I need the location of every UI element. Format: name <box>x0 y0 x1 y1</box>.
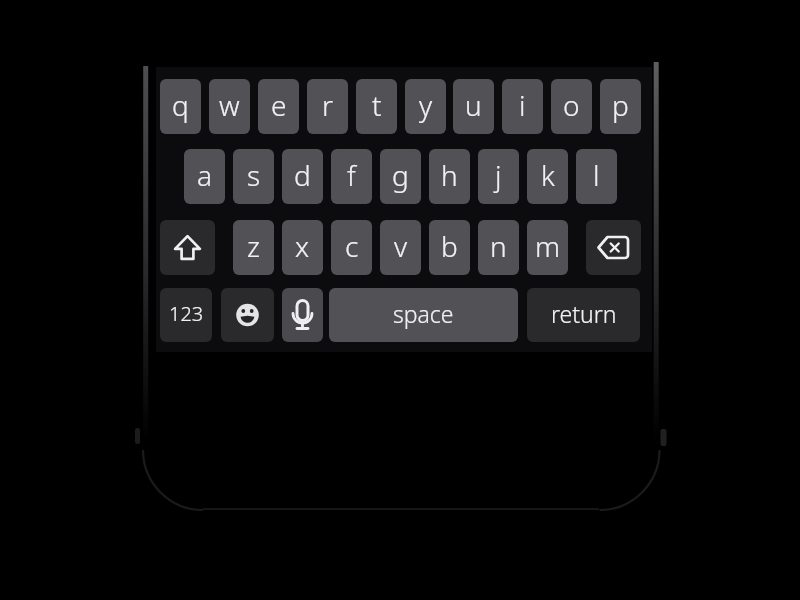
button[interactable] <box>282 288 323 342</box>
staticText: u <box>465 86 482 124</box>
button[interactable]: y <box>405 79 446 134</box>
staticText: c <box>345 227 359 265</box>
staticText: x <box>295 227 310 265</box>
button[interactable]: g <box>380 149 421 204</box>
button[interactable]: c <box>331 220 372 275</box>
button[interactable]: u <box>453 79 494 134</box>
staticText: r <box>322 86 334 124</box>
button[interactable]: h <box>429 149 470 204</box>
staticText: v <box>394 227 408 265</box>
button[interactable]: k <box>527 149 568 204</box>
staticText: l <box>593 156 600 194</box>
button[interactable]: q <box>160 79 201 134</box>
button[interactable]: m <box>527 220 568 275</box>
button[interactable]: o <box>551 79 592 134</box>
staticText: e <box>271 86 287 124</box>
button[interactable]: x <box>282 220 323 275</box>
button[interactable]: b <box>429 220 470 275</box>
staticText: j <box>495 156 502 194</box>
button[interactable]: t <box>356 79 397 134</box>
button[interactable]: j <box>478 149 519 204</box>
button[interactable]: s <box>233 149 274 204</box>
staticText: space <box>393 298 454 329</box>
button[interactable]: return <box>527 288 640 342</box>
button[interactable]: d <box>282 149 323 204</box>
button[interactable]: i <box>502 79 543 134</box>
button[interactable]: v <box>380 220 421 275</box>
button[interactable]: w <box>209 79 250 134</box>
button[interactable] <box>586 220 641 275</box>
staticText: y <box>419 86 433 124</box>
button[interactable]: f <box>331 149 372 204</box>
button[interactable]: space <box>329 288 518 342</box>
staticText: 123 <box>169 300 204 327</box>
button[interactable]: r <box>307 79 348 134</box>
staticText: s <box>247 156 261 194</box>
button[interactable]: z <box>233 220 274 275</box>
staticText: q <box>172 86 189 124</box>
staticText: n <box>490 227 507 265</box>
button[interactable]: n <box>478 220 519 275</box>
staticText: f <box>347 156 356 194</box>
staticText: p <box>612 86 629 124</box>
button[interactable]: p <box>600 79 641 134</box>
staticText: t <box>372 86 382 124</box>
staticText: k <box>541 156 555 194</box>
staticText: i <box>519 86 526 124</box>
button[interactable] <box>160 220 215 275</box>
staticText: d <box>294 156 311 194</box>
staticText: w <box>219 86 240 124</box>
button[interactable] <box>221 288 274 342</box>
button[interactable]: a <box>184 149 225 204</box>
staticText: a <box>197 156 213 194</box>
staticText: z <box>247 227 260 265</box>
button[interactable]: e <box>258 79 299 134</box>
staticText: h <box>441 156 458 194</box>
staticText: return <box>551 298 617 329</box>
staticText: m <box>535 227 561 265</box>
button[interactable]: 123 <box>160 288 212 342</box>
staticText: o <box>563 86 580 124</box>
button[interactable]: l <box>576 149 617 204</box>
staticText: g <box>392 156 409 194</box>
staticText: b <box>441 227 458 265</box>
